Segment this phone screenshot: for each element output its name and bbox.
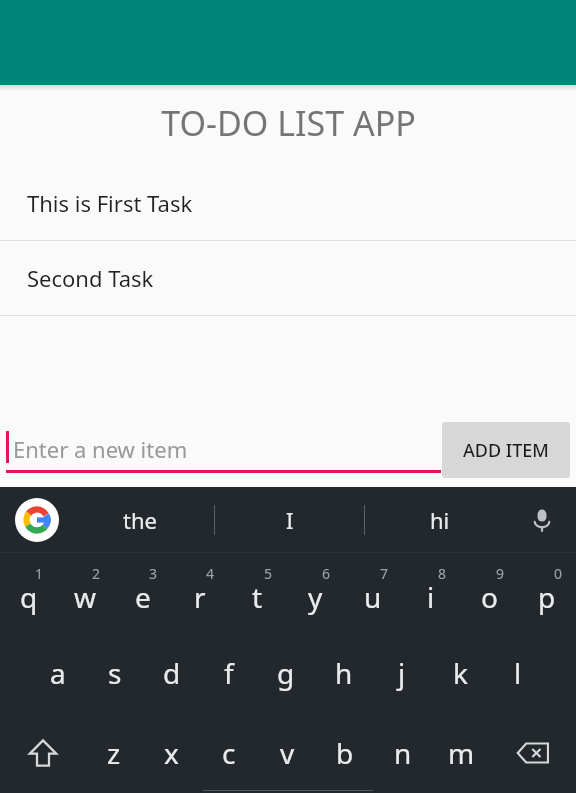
staticText: h (335, 654, 353, 692)
staticText: l (514, 654, 522, 692)
button[interactable]: 6 (286, 553, 344, 633)
button[interactable]: 3 (114, 553, 171, 633)
staticText: u (364, 578, 382, 616)
button[interactable]: Backspace (490, 713, 576, 793)
staticText: q (20, 578, 38, 616)
button[interactable]: v (258, 713, 316, 793)
button[interactable]: 5 (228, 553, 286, 633)
staticText: k (453, 654, 468, 692)
staticText: t (252, 578, 263, 616)
button[interactable]: n (374, 713, 432, 793)
button[interactable]: x (142, 713, 200, 793)
button[interactable]: g (257, 633, 315, 713)
button[interactable]: 1 (0, 553, 57, 633)
button[interactable]: Shift (0, 713, 85, 793)
button[interactable]: 9 (460, 553, 518, 633)
staticText: e (135, 578, 151, 616)
staticText: v (280, 734, 295, 772)
button[interactable]: b (316, 713, 374, 793)
button[interactable]: f (200, 633, 257, 713)
staticText: hi (430, 505, 450, 535)
staticText: 4 (206, 564, 215, 583)
button[interactable]: m (432, 713, 490, 793)
staticText: 9 (496, 564, 505, 583)
button[interactable]: 4 (171, 553, 228, 633)
button[interactable]: Second Task (0, 241, 576, 315)
button[interactable]: I (215, 487, 364, 553)
staticText: a (50, 654, 66, 692)
staticText: z (107, 734, 121, 772)
button[interactable]: c (200, 713, 258, 793)
staticText: the (123, 505, 157, 535)
staticText: I (286, 505, 294, 535)
button[interactable]: z (85, 713, 142, 793)
staticText: 3 (149, 564, 158, 583)
staticText: y (308, 578, 323, 616)
button[interactable]: Enter a new item (0, 412, 435, 487)
button[interactable]: 8 (402, 553, 460, 633)
button[interactable]: a (29, 633, 86, 713)
staticText: p (538, 578, 556, 616)
staticText: x (164, 734, 179, 772)
button[interactable]: j (373, 633, 431, 713)
staticText: 2 (92, 564, 101, 583)
staticText: i (427, 578, 435, 616)
staticText: This is First Task (27, 188, 193, 218)
button[interactable]: hi (365, 487, 514, 553)
staticText: ADD ITEM (463, 438, 549, 463)
button[interactable]: 0 (518, 553, 576, 633)
staticText: m (448, 734, 475, 772)
staticText: b (336, 734, 354, 772)
button[interactable]: Google (15, 498, 59, 542)
button[interactable]: 2 (57, 553, 114, 633)
staticText: 8 (438, 564, 447, 583)
staticText: j (398, 654, 406, 692)
button[interactable]: l (489, 633, 547, 713)
button[interactable]: h (315, 633, 373, 713)
staticText: d (163, 654, 181, 692)
staticText: c (222, 734, 236, 772)
button[interactable]: ADD ITEM (442, 422, 570, 478)
staticText: f (224, 654, 234, 692)
staticText: r (194, 578, 206, 616)
button[interactable]: k (431, 633, 489, 713)
staticText: 7 (380, 564, 389, 583)
staticText: Second Task (27, 263, 154, 293)
button[interactable]: 7 (344, 553, 402, 633)
staticText: w (74, 578, 97, 616)
button[interactable]: d (143, 633, 200, 713)
staticText: o (481, 578, 498, 616)
staticText: n (394, 734, 412, 772)
staticText: 6 (322, 564, 331, 583)
staticText: s (108, 654, 122, 692)
staticText: 5 (264, 564, 273, 583)
button[interactable]: s (86, 633, 143, 713)
button[interactable]: the (66, 487, 214, 553)
staticText: g (277, 654, 295, 692)
button[interactable]: This is First Task (0, 166, 576, 240)
staticText: 1 (35, 564, 44, 583)
staticText: Enter a new item (13, 434, 188, 464)
staticText: 0 (554, 564, 563, 583)
button[interactable]: Voice input (522, 500, 562, 540)
staticText: TO-DO LIST APP (161, 100, 416, 146)
